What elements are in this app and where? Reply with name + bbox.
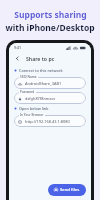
staticText: http://192.168.43.1:8080 <box>25 119 70 124</box>
staticText: Connect to this network <box>19 68 63 73</box>
staticText: Share to pc <box>26 55 55 62</box>
button[interactable]: dsfgh87f8nmxcv <box>14 92 86 104</box>
staticText: Send files <box>60 187 80 193</box>
staticText: 9:41 <box>14 45 22 50</box>
button[interactable]: http://192.168.43.1:8080 <box>14 115 86 127</box>
staticText: SSID Name <box>20 75 37 79</box>
button[interactable]: Send files <box>48 184 86 196</box>
staticText: Password <box>20 90 35 94</box>
staticText: In Your Browser <box>20 113 44 117</box>
button[interactable]: AndroidShare_3AB1 <box>14 77 86 89</box>
staticText: AndroidShare_3AB1 <box>25 81 62 86</box>
button[interactable]: Back <box>13 54 22 63</box>
staticText: dsfgh87f8nmxcv <box>25 96 56 101</box>
staticText: Open below link <box>19 106 49 111</box>
staticText: Supports sharing <box>14 9 87 21</box>
staticText: with iPhone/Desktop <box>5 22 95 34</box>
